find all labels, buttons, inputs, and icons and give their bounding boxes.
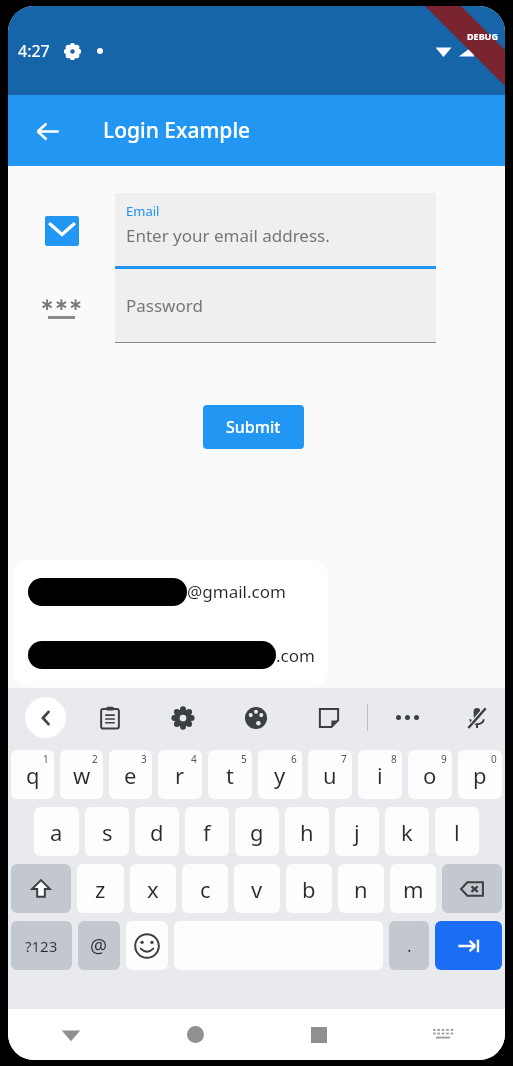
button[interactable]: q (11, 750, 54, 799)
staticText: w (73, 760, 91, 790)
button[interactable]: Emoji (126, 921, 168, 970)
staticText: f (203, 817, 211, 847)
button[interactable]: Stickers (311, 700, 346, 735)
staticText: s (102, 817, 113, 847)
staticText: Login Example (103, 116, 251, 145)
staticText: x (147, 874, 159, 904)
button[interactable]: Enter (435, 921, 502, 970)
staticText: 4 (191, 752, 197, 766)
button[interactable]: f (185, 807, 229, 856)
staticText: ∗∗∗ (40, 294, 83, 314)
staticText: z (95, 874, 106, 904)
staticText: Enter your email address. (126, 224, 330, 247)
staticText: . (407, 934, 412, 957)
button[interactable]: . (389, 921, 429, 970)
button[interactable]: Settings (165, 700, 200, 735)
button[interactable]: o (408, 750, 452, 799)
button[interactable]: Clipboard (92, 700, 127, 735)
button[interactable]: Email (115, 193, 436, 266)
staticText: 8 (391, 752, 397, 766)
staticText: c (200, 874, 211, 904)
staticText: .com (276, 644, 315, 667)
button[interactable]: Password (115, 269, 436, 342)
staticText: @ (90, 933, 108, 959)
button[interactable]: @gmail.com (14, 560, 328, 623)
button[interactable]: c (182, 864, 228, 913)
staticText: Email (126, 202, 160, 220)
staticText: i (377, 760, 383, 790)
button[interactable]: Home (133, 1009, 257, 1060)
button[interactable]: Submit (203, 405, 304, 449)
staticText: 2 (92, 752, 98, 766)
staticText: v (251, 874, 263, 904)
staticText: 3 (141, 752, 147, 766)
staticText: p (473, 760, 487, 790)
staticText: j (354, 817, 360, 847)
staticText: o (423, 760, 437, 790)
staticText: m (403, 874, 424, 904)
staticText: Password (126, 294, 203, 317)
button[interactable]: j (335, 807, 379, 856)
button[interactable]: h (285, 807, 329, 856)
staticText: l (454, 817, 460, 847)
button[interactable]: u (308, 750, 352, 799)
staticText: 9 (441, 752, 447, 766)
button[interactable]: Voice input off (459, 700, 494, 735)
button[interactable]: s (85, 807, 129, 856)
button[interactable]: Backspace (442, 864, 502, 913)
staticText: d (150, 817, 164, 847)
staticText: 0 (491, 752, 497, 766)
button[interactable]: n (338, 864, 384, 913)
staticText: t (226, 760, 234, 790)
button[interactable]: Shift (11, 864, 71, 913)
staticText: u (323, 760, 337, 790)
staticText: ?123 (25, 936, 58, 956)
button[interactable]: w (60, 750, 103, 799)
button[interactable]: x (130, 864, 176, 913)
staticText: @gmail.com (187, 580, 286, 603)
button[interactable]: Recent apps (257, 1009, 381, 1060)
button[interactable]: Back (8, 1009, 133, 1060)
button[interactable]: a (34, 807, 79, 856)
staticText: b (302, 874, 316, 904)
staticText: n (354, 874, 368, 904)
button[interactable]: v (234, 864, 280, 913)
button[interactable]: .com (14, 623, 328, 687)
button[interactable]: l (435, 807, 479, 856)
staticText: 1 (43, 752, 49, 766)
button[interactable]: Back (24, 108, 70, 154)
staticText: q (26, 760, 40, 790)
staticText: y (274, 760, 286, 790)
button[interactable]: y (258, 750, 302, 799)
staticText: Submit (226, 416, 281, 438)
staticText: e (124, 760, 137, 790)
button[interactable]: Switch keyboard (381, 1009, 505, 1060)
button[interactable]: k (385, 807, 429, 856)
button[interactable]: m (390, 864, 436, 913)
button[interactable]: r (158, 750, 202, 799)
button[interactable]: t (208, 750, 252, 799)
button[interactable]: g (235, 807, 279, 856)
button[interactable]: @ (78, 921, 120, 970)
button[interactable]: i (358, 750, 402, 799)
staticText: 6 (291, 752, 297, 766)
button[interactable]: z (77, 864, 124, 913)
button[interactable]: ?123 (11, 921, 72, 970)
staticText: a (50, 817, 63, 847)
staticText: g (250, 817, 264, 847)
button[interactable]: b (286, 864, 332, 913)
button[interactable]: Themes (238, 700, 273, 735)
staticText: 7 (341, 752, 347, 766)
staticText: DEBUG (467, 30, 498, 42)
staticText: 5 (241, 752, 247, 766)
button[interactable]: p (458, 750, 502, 799)
button[interactable]: Back (25, 697, 66, 738)
staticText: h (300, 817, 314, 847)
button[interactable]: e (109, 750, 152, 799)
button[interactable]: More options (390, 700, 425, 735)
staticText: k (401, 817, 413, 847)
button[interactable]: d (135, 807, 179, 856)
staticText: r (175, 760, 185, 790)
staticText: 4:27 (18, 40, 50, 62)
